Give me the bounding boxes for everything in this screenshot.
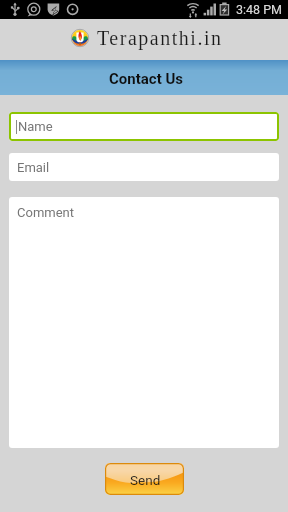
staticText: Send bbox=[130, 472, 161, 488]
button[interactable]: Comment bbox=[9, 197, 279, 448]
staticText: 3:48 PM bbox=[236, 2, 283, 17]
button[interactable]: Name bbox=[9, 112, 279, 141]
staticText: Email bbox=[17, 160, 50, 175]
other: Terapanth logo bbox=[71, 29, 89, 47]
staticText: Terapanthi.in bbox=[97, 27, 223, 49]
staticText: Name bbox=[18, 119, 53, 134]
button[interactable]: Email bbox=[9, 153, 279, 181]
button[interactable]: Send bbox=[105, 463, 184, 495]
staticText: Comment bbox=[17, 205, 75, 220]
staticText: Contact Us bbox=[109, 70, 184, 88]
